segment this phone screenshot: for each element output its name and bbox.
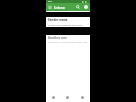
button[interactable]: More <box>75 93 90 102</box>
staticText: Inbox <box>54 5 65 10</box>
button[interactable]: Open navigation menu <box>46 3 54 11</box>
button[interactable]: Meet <box>60 93 75 102</box>
staticText: 9:41 <box>48 0 52 3</box>
staticText: Another one <box>48 36 67 40</box>
staticText: Sender name <box>48 18 68 22</box>
button[interactable]: Account <box>82 3 90 11</box>
button[interactable]: Mail <box>46 93 60 102</box>
staticText: Subject line preview text here <box>48 23 83 26</box>
staticText: Preview of the message body text <box>48 40 88 43</box>
button[interactable]: Search <box>74 3 82 11</box>
